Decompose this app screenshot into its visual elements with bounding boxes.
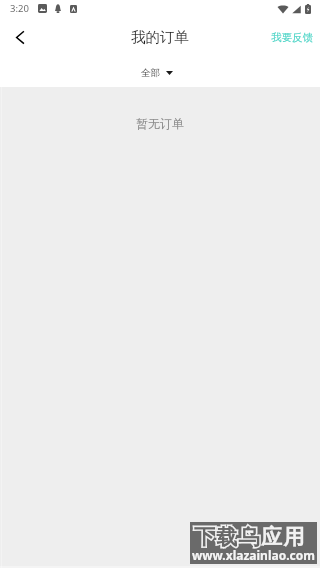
button[interactable]: 返回	[0, 22, 40, 52]
staticText: 3:20	[10, 2, 29, 15]
staticText: 全部	[141, 67, 160, 79]
staticText: www.xlazainlao.com	[192, 547, 315, 563]
staticText: 应用	[261, 524, 306, 550]
staticText: 下载乌	[194, 524, 261, 550]
button[interactable]: 我要反馈	[261, 22, 320, 52]
staticText: 暂无订单	[136, 116, 184, 131]
button[interactable]: 全部	[131, 62, 183, 84]
staticText: 我的订单	[131, 28, 189, 46]
staticText: 下载乌	[194, 524, 261, 550]
staticText: 我要反馈	[271, 31, 313, 44]
